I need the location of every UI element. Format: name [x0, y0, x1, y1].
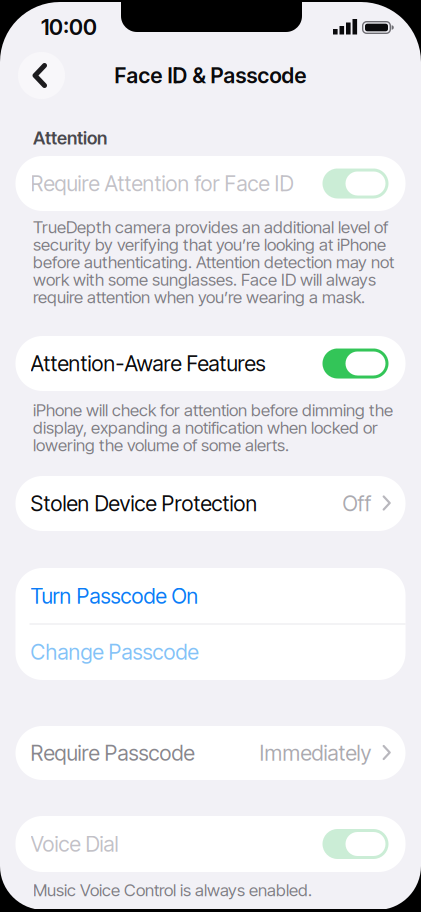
staticText: work with some sunglasses. Face ID will …	[33, 269, 376, 290]
staticText: display, expanding a notification when l…	[33, 417, 378, 438]
staticText: iPhone will check for attention before d…	[33, 400, 393, 420]
staticText: Attention	[33, 127, 107, 149]
staticText: TrueDepth camera provides an additional …	[33, 217, 388, 237]
button[interactable]: Stolen Device Protection	[15, 476, 405, 531]
staticText: Require Attention for Face ID	[30, 171, 293, 196]
staticText: require attention when you’re wearing a …	[33, 287, 365, 307]
staticText: Require Passcode	[30, 740, 194, 766]
staticText: 10:00	[41, 14, 97, 40]
staticText: Turn Passcode On	[30, 583, 198, 609]
staticText: Voice Dial	[30, 831, 118, 857]
staticText: before authenticating. Attention detecti…	[33, 252, 394, 272]
button[interactable]: Require Attention for Face ID	[15, 156, 405, 211]
staticText: Stolen Device Protection	[30, 491, 257, 516]
button[interactable]: Attention-Aware Features	[15, 336, 405, 391]
button[interactable]: Change Passcode	[15, 624, 405, 680]
staticText: Music Voice Control is always enabled.	[33, 880, 312, 900]
button[interactable]: Turn Passcode On	[15, 568, 405, 624]
button[interactable]: Back	[18, 52, 65, 99]
staticText: Attention-Aware Features	[30, 351, 265, 376]
button[interactable]: Voice Dial	[15, 816, 405, 872]
staticText: lowering the volume of some alerts.	[33, 435, 289, 455]
staticText: Immediately	[259, 740, 371, 766]
staticText: Change Passcode	[30, 639, 198, 665]
staticText: Face ID & Passcode	[114, 63, 306, 88]
staticText: security by verifying that you’re lookin…	[33, 234, 386, 255]
staticText: Off	[342, 491, 371, 516]
button[interactable]: Require Passcode	[15, 726, 405, 780]
